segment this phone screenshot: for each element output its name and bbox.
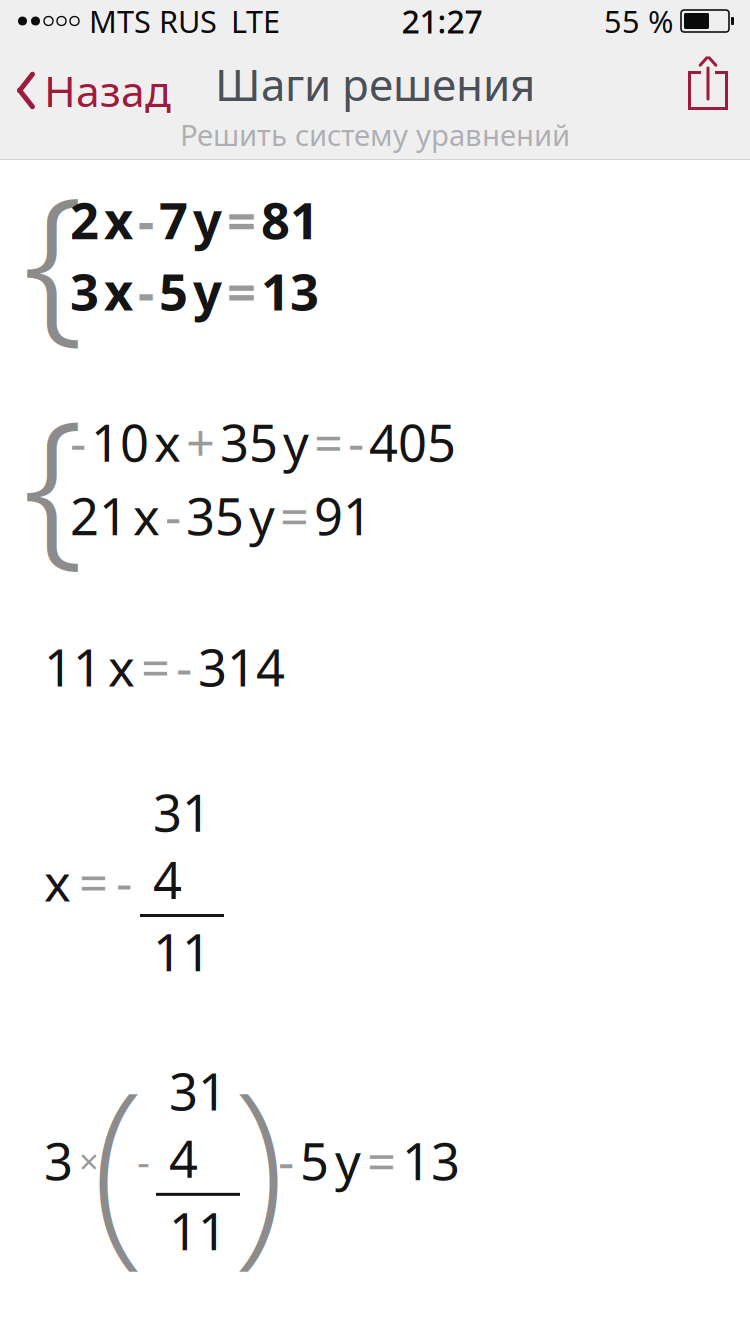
staticText: y [193, 186, 222, 253]
staticText: x [154, 409, 181, 476]
staticText: y [335, 1127, 361, 1194]
staticText: 10 [91, 409, 149, 476]
staticText: x [44, 848, 71, 915]
staticText: 21 [70, 482, 128, 549]
staticText: = [227, 186, 256, 253]
staticText: = [227, 257, 256, 325]
staticText: 405 [369, 409, 456, 476]
staticText: 21:27 [401, 0, 482, 42]
staticText: y [283, 409, 309, 476]
staticText: - [70, 409, 86, 476]
button[interactable]: Назад [0, 55, 181, 125]
staticText: Шаги решения [215, 55, 535, 113]
staticText: 91 [314, 482, 372, 549]
staticText: 35 [186, 482, 244, 549]
staticText: + [186, 409, 215, 476]
staticText: { [22, 365, 83, 592]
staticText: × [79, 1138, 99, 1184]
staticText: = [141, 633, 170, 700]
staticText: ( [91, 1025, 145, 1296]
staticText: x [104, 257, 133, 325]
staticText: x [108, 633, 135, 700]
staticText: = [280, 482, 309, 549]
staticText: 3 [70, 257, 99, 325]
staticText: MTS RUS [89, 1, 217, 41]
staticText: - [165, 482, 181, 549]
staticText: - [348, 409, 364, 476]
staticText: - [278, 1127, 294, 1194]
staticText: 5 [300, 1127, 329, 1194]
staticText: 81 [261, 186, 319, 253]
staticText: Назад [44, 62, 171, 119]
staticText: 5 [159, 257, 188, 325]
staticText: ) [232, 1025, 286, 1296]
staticText: - [116, 848, 132, 915]
staticText: 7 [159, 186, 188, 253]
staticText: 13 [402, 1127, 460, 1194]
staticText: x [133, 482, 160, 549]
staticText: 11 [44, 633, 102, 700]
staticText: 2 [70, 186, 99, 253]
staticText: = [79, 848, 108, 915]
staticText: x [104, 186, 133, 253]
staticText: 314 [198, 633, 285, 700]
staticText: - [137, 1134, 150, 1187]
staticText: = [367, 1127, 396, 1194]
button[interactable]: Share [686, 55, 750, 125]
staticText: 314 [153, 778, 211, 913]
staticText: = [314, 409, 343, 476]
staticText: 55 % [604, 1, 673, 41]
staticText: y [193, 257, 222, 325]
staticText: y [249, 482, 275, 549]
staticText: 3 [44, 1127, 73, 1194]
staticText: - [176, 633, 192, 700]
staticText: 13 [261, 257, 319, 325]
staticText: 11 [153, 918, 211, 985]
staticText: 314 [169, 1057, 227, 1192]
staticText: - [138, 257, 154, 325]
staticText: - [138, 186, 154, 253]
staticText: { [22, 142, 83, 369]
staticText: 11 [169, 1197, 227, 1264]
staticText: 35 [220, 409, 278, 476]
staticText: Решить систему уравнений [180, 115, 570, 154]
staticText: LTE [231, 1, 280, 41]
